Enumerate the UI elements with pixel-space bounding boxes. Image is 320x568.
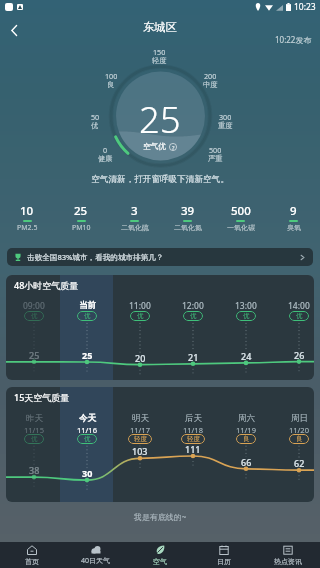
staticText: 09:00 [23, 300, 45, 312]
button[interactable]: 500 [214, 203, 267, 230]
button[interactable]: 热点资讯 [256, 542, 320, 568]
staticText: 当前 [79, 300, 96, 311]
staticText: PM10 [72, 223, 91, 233]
staticText: 昨天 [26, 413, 43, 424]
staticText: 二氧化氮 [174, 223, 202, 232]
staticText: 62 [294, 457, 305, 469]
button[interactable]: 今天 [60, 413, 114, 434]
button[interactable]: 日历 [192, 542, 256, 568]
staticText: 明天 [132, 413, 149, 424]
staticText: 严重 [208, 154, 223, 163]
staticText: 12:00 [182, 300, 204, 312]
staticText: 11/17 [130, 425, 150, 435]
staticText: 轻度 [152, 56, 167, 65]
staticText: 今天 [79, 413, 96, 424]
staticText: 一氧化碳 [227, 223, 255, 232]
staticText: 空气优 [143, 142, 166, 152]
staticText: 优 [84, 312, 91, 320]
staticText: 100 [105, 71, 118, 81]
staticText: 10:23 [294, 1, 316, 13]
staticText: 40日天气 [81, 556, 111, 566]
button[interactable]: 14:00 [272, 300, 314, 312]
staticText: 50 [91, 112, 100, 122]
staticText: 11/15 [24, 425, 44, 435]
button[interactable]: 首页 [0, 542, 64, 568]
staticText: 空气 [153, 557, 167, 566]
staticText: 二氧化硫 [121, 223, 149, 232]
button[interactable]: 39 [161, 203, 214, 230]
staticText: 15天空气质量 [14, 391, 70, 403]
button[interactable]: 3 [108, 203, 161, 230]
staticText: 优 [31, 312, 38, 320]
staticText: 轻度 [134, 435, 147, 443]
staticText: 103 [132, 445, 148, 457]
staticText: 优 [91, 121, 99, 130]
button[interactable]: 空气 [128, 542, 192, 568]
staticText: 11/16 [77, 425, 97, 435]
staticText: 200 [204, 71, 217, 81]
staticText: 0 [103, 145, 108, 155]
staticText: 周日 [291, 413, 308, 424]
button[interactable]: Back [0, 16, 28, 44]
staticText: 空气清新，打开窗呼吸下清新空气。 [0, 174, 320, 185]
button[interactable]: 9 [267, 203, 320, 230]
staticText: 14:00 [288, 300, 310, 312]
staticText: 25 [74, 203, 88, 219]
staticText: 良 [296, 435, 303, 443]
staticText: 日历 [217, 557, 231, 566]
button[interactable]: 当前 [60, 300, 114, 311]
staticText: 150 [153, 47, 166, 57]
staticText: 优 [243, 312, 250, 320]
staticText: 优 [296, 312, 303, 320]
staticText: 轻度 [187, 435, 200, 443]
staticText: 优 [84, 435, 91, 443]
staticText: 优 [190, 312, 197, 320]
staticText: 中度 [203, 80, 218, 89]
button[interactable]: 09:00 [7, 300, 61, 312]
staticText: 11/18 [183, 425, 203, 435]
button[interactable]: 10 [0, 203, 54, 231]
staticText: 11/20 [289, 425, 309, 435]
staticText: 500 [209, 145, 222, 155]
staticText: 25 [29, 349, 40, 361]
staticText: 优 [137, 312, 144, 320]
staticText: 30 [82, 467, 93, 479]
button[interactable]: 击败全国83%城市，看我的城市排第几？ [7, 248, 313, 266]
button[interactable]: 后天 [166, 413, 220, 434]
button[interactable]: 11:00 [113, 300, 167, 312]
staticText: 11:00 [129, 300, 151, 312]
button[interactable]: 25 [54, 203, 108, 231]
staticText: 周六 [238, 413, 255, 424]
staticText: 25 [82, 349, 93, 361]
button[interactable]: 12:00 [166, 300, 220, 312]
staticText: 热点资讯 [274, 557, 302, 566]
staticText: 10 [20, 203, 34, 219]
button[interactable]: 周六 [219, 413, 273, 434]
staticText: 良 [243, 435, 250, 443]
staticText: 健康 [98, 154, 113, 163]
button[interactable]: 周日 [272, 413, 314, 434]
staticText: PM2.5 [17, 223, 38, 233]
staticText: 击败全国83%城市，看我的城市排第几？ [27, 252, 164, 262]
staticText: 良 [107, 80, 115, 89]
staticText: 24 [241, 350, 252, 362]
staticText: 我是有底线的~ [0, 511, 320, 522]
button[interactable]: 明天 [113, 413, 167, 434]
button[interactable]: 13:00 [219, 300, 273, 312]
staticText: 25 [139, 94, 181, 144]
button[interactable]: 40日天气 [64, 542, 128, 568]
staticText: 臭氧 [287, 223, 301, 232]
staticText: 20 [135, 352, 146, 364]
staticText: 11/19 [236, 425, 256, 435]
button[interactable]: 昨天 [7, 413, 61, 434]
staticText: 优 [31, 435, 38, 443]
staticText: 21 [188, 351, 199, 363]
staticText: 500 [231, 203, 251, 219]
staticText: 首页 [25, 557, 39, 566]
staticText: 10:22发布 [275, 34, 312, 45]
staticText: 111 [185, 443, 201, 455]
staticText: 300 [219, 112, 232, 122]
staticText: 48小时空气质量 [14, 279, 79, 291]
staticText: 3 [131, 203, 138, 219]
staticText: 66 [241, 456, 252, 468]
